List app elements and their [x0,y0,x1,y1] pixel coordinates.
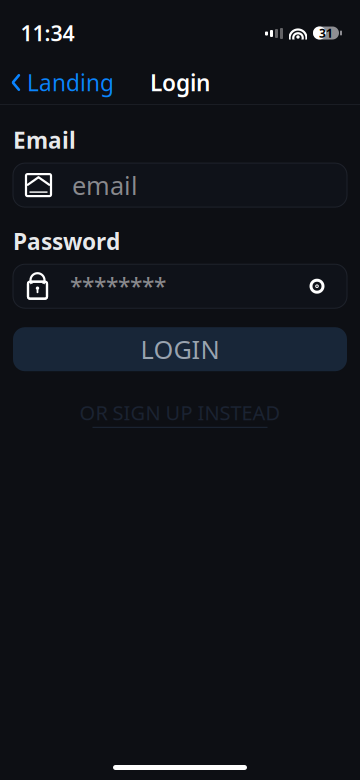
staticText: LOGIN [140,332,219,366]
staticText: Login [150,67,210,97]
staticText: 11:34 [20,19,74,47]
button[interactable]: LOGIN [13,327,347,371]
staticText: 31 [319,25,333,41]
staticText: ******** [70,271,166,301]
staticText: Landing [27,67,114,97]
staticText: Email [13,125,76,155]
staticText: OR SIGN UP INSTEAD [79,399,280,426]
button[interactable]: Landing [0,59,114,105]
staticText: Password [13,226,120,256]
button[interactable]: Show password [293,268,341,305]
button[interactable]: OR SIGN UP INSTEAD [13,393,347,434]
staticText: email [72,168,138,202]
